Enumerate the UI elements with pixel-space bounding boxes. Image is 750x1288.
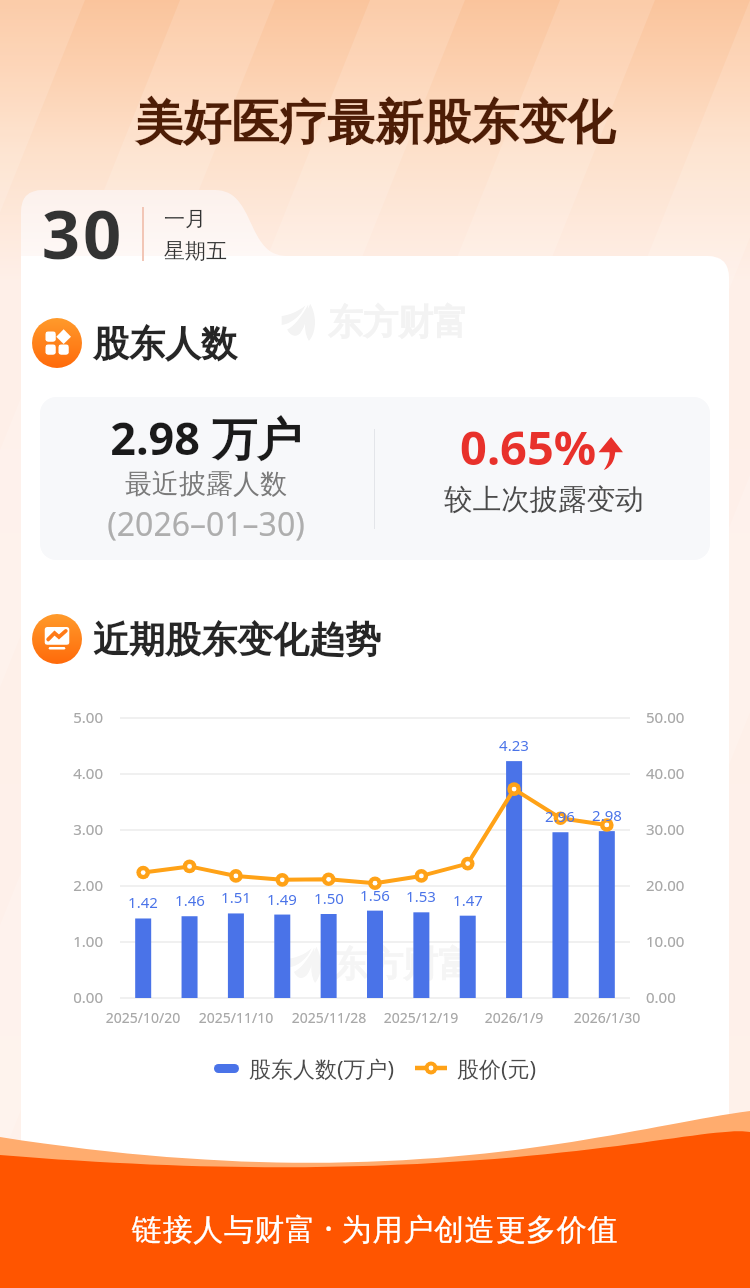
- staticText: 2026/1/30: [517, 1008, 697, 1027]
- staticText: 3.00: [0, 819, 103, 839]
- staticText: 4.23: [454, 735, 574, 755]
- staticText: 0.65%: [460, 415, 597, 479]
- staticText: 1.00: [0, 931, 103, 951]
- staticText: 1.51: [176, 887, 296, 907]
- staticText: 股东人数(万户): [249, 1053, 395, 1083]
- staticText: 1.50: [269, 888, 389, 908]
- staticText: 星期五: [164, 238, 264, 264]
- staticText: (2026–01–30): [6, 502, 406, 546]
- button[interactable]: 近期股东变化趋势: [32, 611, 381, 667]
- staticText: 4.00: [0, 763, 103, 783]
- button[interactable]: [40, 397, 710, 560]
- staticText: 0.00: [646, 987, 750, 1007]
- staticText: 20.00: [646, 875, 750, 895]
- staticText: 2.98: [547, 805, 667, 825]
- staticText: 50.00: [646, 707, 750, 727]
- staticText: 美好医疗最新股东变化: [25, 93, 725, 153]
- staticText: 2025/12/19: [331, 1008, 511, 1027]
- staticText: 较上次披露变动: [344, 482, 744, 518]
- staticText: 2025/11/10: [146, 1008, 326, 1027]
- staticText: 0.00: [0, 987, 103, 1007]
- staticText: 最近披露人数: [6, 467, 406, 501]
- staticText: 10.00: [646, 931, 750, 951]
- staticText: 2.00: [0, 875, 103, 895]
- staticText: 40.00: [646, 763, 750, 783]
- button[interactable]: 股东人数(万户): [0, 1051, 750, 1085]
- staticText: 链接人与财富 · 为用户创造更多价值: [25, 1208, 725, 1249]
- staticText: 近期股东变化趋势: [93, 617, 381, 662]
- staticText: 一月: [164, 206, 264, 232]
- staticText: 1.47: [408, 890, 528, 910]
- staticText: 2025/10/20: [53, 1008, 233, 1027]
- staticText: 2.98 万户: [6, 407, 406, 468]
- staticText: 1.53: [361, 886, 481, 906]
- staticText: 5.00: [0, 707, 103, 727]
- staticText: 1.42: [83, 892, 203, 912]
- staticText: 东方财富: [328, 300, 468, 344]
- staticText: 2.96: [500, 806, 620, 826]
- staticText: 股东人数: [93, 321, 237, 366]
- staticText: 30: [0, 187, 183, 278]
- staticText: 2026/1/9: [424, 1008, 604, 1027]
- staticText: 1.46: [130, 890, 250, 910]
- staticText: 股价(元): [457, 1053, 537, 1083]
- staticText: 东方财富: [333, 942, 473, 986]
- staticText: 1.56: [315, 885, 435, 905]
- staticText: 30.00: [646, 819, 750, 839]
- staticText: 1.49: [222, 889, 342, 909]
- staticText: 2025/11/28: [239, 1008, 419, 1027]
- button[interactable]: 股东人数: [32, 315, 237, 371]
